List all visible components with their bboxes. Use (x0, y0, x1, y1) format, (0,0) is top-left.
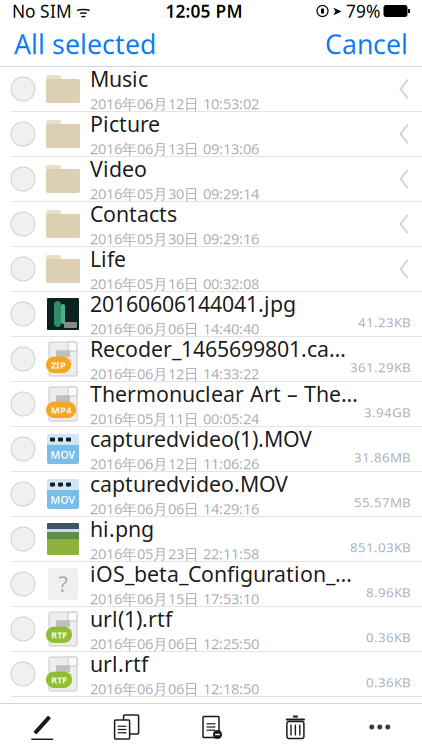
staticText: 79% (346, 0, 380, 22)
staticText: 2016年06月06日 14:29:16 (90, 499, 259, 518)
staticText: ➤ (332, 4, 342, 18)
staticText: ZIP (51, 359, 66, 371)
button[interactable]: Delete (253, 704, 338, 750)
staticText: 2016年06月12日 10:53:02 (90, 94, 259, 113)
staticText: MOV (50, 447, 75, 462)
staticText: Picture (90, 110, 160, 138)
staticText: 2016年05月16日 00:32:08 (90, 274, 259, 293)
staticText: 2016年05月30日 09:29:14 (90, 184, 259, 203)
button[interactable]: All selected (2, 18, 168, 70)
staticText: 8.96KB (366, 583, 411, 601)
staticText: Music (90, 65, 148, 93)
button[interactable]: Picture (0, 112, 422, 157)
staticText: Thermonuclear Art – The Sun In Ultra-… (90, 380, 360, 408)
button[interactable]: Video (0, 157, 422, 202)
staticText: 2016年06月15日 17:53:10 (90, 589, 259, 608)
button[interactable]: Life (0, 247, 422, 292)
staticText: url(1).rtf (90, 605, 172, 633)
staticText: 2016年05月23日 22:11:58 (90, 544, 259, 563)
staticText: 2016年06月06日 14:40:40 (90, 319, 259, 338)
button[interactable]: Contacts (0, 202, 422, 247)
staticText: 851.03KB (350, 538, 411, 556)
staticText: Video (90, 155, 147, 183)
staticText: No SIM (12, 0, 72, 22)
button[interactable]: Rename (0, 704, 84, 750)
button[interactable]: RTF (0, 607, 422, 652)
staticText: 41.23KB (358, 313, 411, 331)
button[interactable]: More (338, 704, 422, 750)
staticText: 361.29KB (350, 358, 411, 376)
staticText: 0.36KB (366, 673, 411, 691)
staticText: Contacts (90, 200, 177, 228)
staticText: 12:05 PM (165, 0, 242, 22)
staticText: 2016年06月13日 09:13:06 (90, 139, 259, 158)
staticText: capturedvideo.MOV (90, 470, 288, 498)
staticText: 2016年06月12日 11:06:26 (90, 454, 259, 473)
staticText: ᯤ (72, 0, 91, 22)
staticText: MOV (50, 492, 75, 507)
staticText: 2016年06月12日 14:33:22 (90, 364, 259, 383)
staticText: 55.57MB (354, 493, 411, 511)
staticText: hi.png (90, 515, 154, 543)
staticText: RTF (51, 629, 67, 641)
staticText: All selected (14, 26, 156, 62)
button[interactable]: ZIP (0, 337, 422, 382)
staticText: url.rtf (90, 650, 148, 678)
staticText: Cancel (325, 26, 408, 62)
staticText: ? (58, 570, 67, 598)
button[interactable]: MP4 (0, 382, 422, 427)
staticText: 2016年05月30日 09:29:16 (90, 229, 259, 248)
button[interactable]: RTF (0, 652, 422, 697)
staticText: Life (90, 245, 126, 273)
button[interactable]: ? (0, 562, 422, 607)
staticText: 2016年06月06日 12:25:50 (90, 634, 259, 653)
staticText: 31.86MB (354, 448, 411, 466)
staticText: Recoder_1465699801.caf.zip (90, 335, 346, 363)
staticText: 2016年05月11日 00:05:24 (90, 409, 259, 428)
staticText: 20160606144041.jpg (90, 290, 296, 318)
staticText: 0.36KB (366, 628, 411, 646)
staticText: 2016年06月06日 12:18:50 (90, 679, 259, 698)
staticText: RTF (51, 674, 67, 686)
button[interactable]: Unshare (169, 704, 253, 750)
button[interactable]: Cancel (313, 18, 420, 70)
button[interactable]: Copy (84, 704, 169, 750)
staticText: 3.94GB (364, 403, 411, 421)
button[interactable]: Music (0, 67, 422, 112)
button[interactable]: MOV (0, 427, 422, 472)
button[interactable]: MOV (0, 472, 422, 517)
button[interactable]: 20160606144041.jpg (0, 292, 422, 337)
staticText: capturedvideo(1).MOV (90, 425, 312, 453)
staticText: iOS_beta_Configuration_Profile.mobile… (90, 560, 362, 588)
button[interactable]: hi.png (0, 517, 422, 562)
staticText: MP4 (51, 404, 71, 416)
